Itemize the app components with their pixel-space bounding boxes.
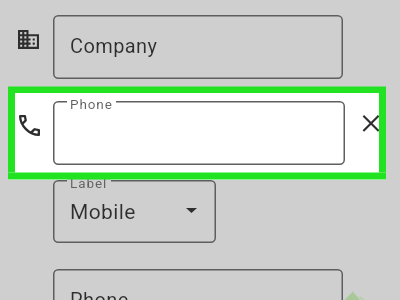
button[interactable]: Clear phone number: [359, 111, 383, 135]
button[interactable]: Phone: [53, 269, 343, 300]
button[interactable]: Phone: [19, 115, 40, 134]
button[interactable]: Company: [18, 30, 39, 49]
button[interactable]: Label: [53, 180, 216, 243]
staticText: Company: [70, 34, 158, 57]
staticText: Label: [70, 175, 108, 191]
button[interactable]: Phone: [53, 101, 345, 165]
staticText: Mobile: [70, 200, 136, 225]
button[interactable]: Open label menu: [186, 208, 197, 213]
staticText: Phone: [70, 288, 129, 300]
staticText: Phone: [70, 96, 113, 112]
button[interactable]: Company: [53, 15, 343, 79]
